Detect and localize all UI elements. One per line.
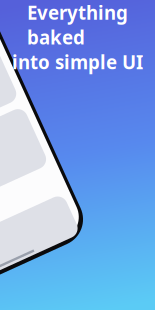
staticText: into simple UI [12,50,143,74]
staticText: Everything baked [27,0,128,50]
